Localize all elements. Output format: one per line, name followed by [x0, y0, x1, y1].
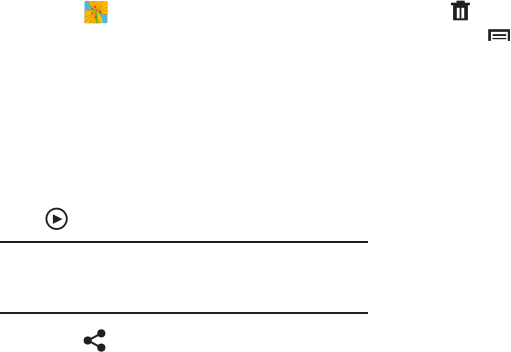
button[interactable]: Play [46, 209, 68, 229]
button[interactable]: Share [84, 330, 105, 351]
button[interactable]: Delete [451, 1, 470, 20]
button[interactable]: Captions [488, 29, 510, 41]
